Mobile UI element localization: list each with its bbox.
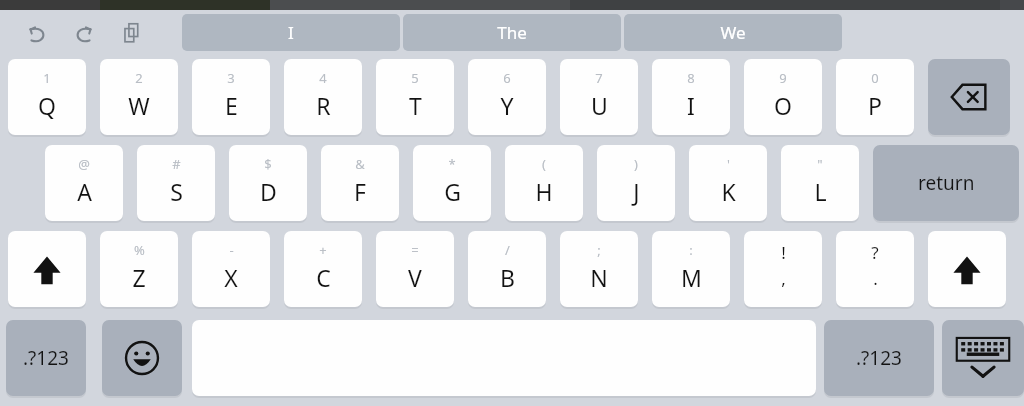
button[interactable]: Undo bbox=[18, 15, 54, 51]
staticText: 8 bbox=[687, 69, 695, 87]
staticText: ( bbox=[542, 155, 546, 173]
staticText: 3 bbox=[227, 69, 235, 87]
staticText: A bbox=[77, 176, 92, 207]
button[interactable]: @ bbox=[45, 145, 123, 221]
staticText: B bbox=[500, 262, 515, 293]
staticText: L bbox=[814, 176, 827, 207]
staticText: We bbox=[720, 21, 746, 44]
staticText: N bbox=[590, 262, 608, 293]
button[interactable]: 7 bbox=[560, 59, 638, 135]
staticText: I bbox=[687, 90, 695, 121]
button[interactable]: return bbox=[873, 145, 1019, 221]
button[interactable]: + bbox=[284, 231, 362, 307]
button[interactable]: ( bbox=[505, 145, 583, 221]
button[interactable]: The bbox=[403, 14, 621, 51]
button[interactable]: Emoji bbox=[102, 320, 182, 396]
staticText: J bbox=[633, 176, 640, 207]
staticText: 2 bbox=[135, 69, 143, 87]
button[interactable]: Copy bbox=[114, 15, 150, 51]
staticText: I bbox=[288, 21, 294, 44]
button[interactable]: $ bbox=[229, 145, 307, 221]
button[interactable]: 4 bbox=[284, 59, 362, 135]
button[interactable]: Shift bbox=[928, 231, 1006, 307]
button[interactable]: 6 bbox=[468, 59, 546, 135]
staticText: " bbox=[817, 155, 823, 173]
staticText: F bbox=[354, 176, 366, 207]
staticText: ! bbox=[781, 241, 786, 264]
button[interactable]: - bbox=[192, 231, 270, 307]
staticText: R bbox=[316, 90, 331, 121]
button[interactable]: % bbox=[100, 231, 178, 307]
staticText: 6 bbox=[503, 69, 511, 87]
staticText: ? bbox=[871, 241, 879, 264]
button[interactable]: 9 bbox=[744, 59, 822, 135]
staticText: E bbox=[225, 90, 238, 121]
staticText: M bbox=[681, 262, 702, 293]
button[interactable]: 8 bbox=[652, 59, 730, 135]
button[interactable]: I bbox=[182, 14, 400, 51]
button[interactable]: Hide keyboard bbox=[942, 320, 1024, 396]
staticText: * bbox=[448, 155, 456, 173]
staticText: 9 bbox=[779, 69, 787, 87]
staticText: & bbox=[355, 155, 365, 173]
staticText: U bbox=[591, 90, 608, 121]
staticText: # bbox=[172, 155, 181, 173]
staticText: V bbox=[408, 262, 422, 293]
staticText: D bbox=[260, 176, 277, 207]
staticText: 7 bbox=[595, 69, 603, 87]
staticText: return bbox=[918, 170, 975, 196]
staticText: , bbox=[781, 267, 786, 290]
button[interactable]: .?123 bbox=[6, 320, 86, 396]
button[interactable]: ? bbox=[836, 231, 914, 307]
button[interactable]: & bbox=[321, 145, 399, 221]
button[interactable]: 5 bbox=[376, 59, 454, 135]
staticText: Y bbox=[500, 90, 514, 121]
staticText: - bbox=[229, 241, 234, 259]
staticText: X bbox=[224, 262, 238, 293]
staticText: 4 bbox=[319, 69, 327, 87]
staticText: G bbox=[444, 176, 461, 207]
staticText: C bbox=[316, 262, 331, 293]
staticText: 1 bbox=[43, 69, 51, 87]
staticText: .?123 bbox=[23, 345, 69, 371]
staticText: / bbox=[505, 241, 510, 259]
staticText: @ bbox=[78, 155, 90, 173]
button[interactable]: We bbox=[624, 14, 842, 51]
staticText: + bbox=[319, 241, 327, 259]
staticText: Z bbox=[132, 262, 146, 293]
button[interactable]: = bbox=[376, 231, 454, 307]
button[interactable]: Redo bbox=[66, 15, 102, 51]
staticText: S bbox=[170, 176, 183, 207]
button[interactable]: ' bbox=[689, 145, 767, 221]
button[interactable]: * bbox=[413, 145, 491, 221]
button[interactable]: " bbox=[781, 145, 859, 221]
staticText: P bbox=[868, 90, 882, 121]
button[interactable]: 1 bbox=[8, 59, 86, 135]
staticText: The bbox=[497, 21, 527, 44]
button[interactable]: / bbox=[468, 231, 546, 307]
button[interactable]: Shift bbox=[8, 231, 86, 307]
button[interactable]: .?123 bbox=[824, 320, 934, 396]
staticText: O bbox=[774, 90, 792, 121]
button[interactable]: 0 bbox=[836, 59, 914, 135]
staticText: .?123 bbox=[856, 345, 902, 371]
button[interactable]: ) bbox=[597, 145, 675, 221]
staticText: = bbox=[411, 241, 419, 259]
staticText: : bbox=[689, 241, 693, 259]
staticText: $ bbox=[264, 155, 272, 173]
staticText: ) bbox=[634, 155, 638, 173]
button[interactable]: Backspace bbox=[928, 59, 1010, 135]
staticText: H bbox=[535, 176, 553, 207]
button[interactable]: 3 bbox=[192, 59, 270, 135]
button[interactable]: # bbox=[137, 145, 215, 221]
staticText: % bbox=[134, 241, 145, 259]
staticText: . bbox=[873, 267, 878, 290]
button[interactable]: : bbox=[652, 231, 730, 307]
staticText: W bbox=[128, 90, 150, 121]
staticText: K bbox=[721, 176, 736, 207]
staticText: T bbox=[409, 90, 422, 121]
button[interactable]: ! bbox=[744, 231, 822, 307]
button[interactable]: 2 bbox=[100, 59, 178, 135]
button[interactable]: ; bbox=[560, 231, 638, 307]
